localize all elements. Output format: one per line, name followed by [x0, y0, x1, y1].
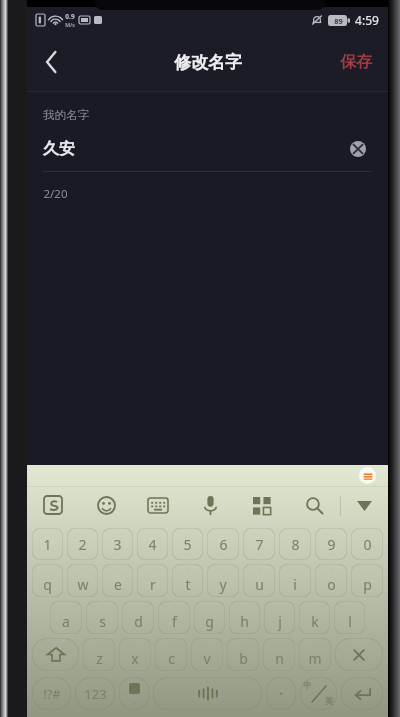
button[interactable]: Symbols: [32, 677, 71, 710]
staticText: r: [150, 575, 156, 594]
staticText: 中: [303, 680, 312, 691]
staticText: n: [275, 649, 284, 668]
button[interactable]: ': [172, 564, 203, 597]
button[interactable]: ': [351, 564, 383, 597]
button[interactable]: 2: [67, 528, 98, 560]
staticText: 0.9: [65, 12, 75, 21]
button[interactable]: Assistant: [359, 467, 376, 484]
staticText: 3: [113, 535, 122, 554]
button[interactable]: Period: [266, 677, 296, 710]
staticText: h: [240, 612, 249, 631]
button[interactable]: Text style: [119, 677, 149, 710]
staticText: 9: [327, 535, 336, 554]
button[interactable]: Enter: [341, 677, 383, 710]
button[interactable]: 9: [315, 528, 347, 560]
staticText: z: [96, 649, 103, 668]
button[interactable]: ': [227, 638, 259, 671]
button[interactable]: ': [264, 601, 295, 634]
staticText: b: [239, 649, 248, 668]
button[interactable]: ': [191, 638, 223, 671]
button[interactable]: 3: [102, 528, 133, 560]
staticText: ,: [133, 694, 136, 705]
button[interactable]: ': [299, 601, 330, 634]
staticText: 4:59: [355, 12, 379, 28]
button[interactable]: ': [50, 601, 82, 634]
button[interactable]: ': [122, 601, 154, 634]
button[interactable]: 4: [137, 528, 168, 560]
button[interactable]: Clear text: [344, 136, 372, 162]
staticText: v: [203, 649, 211, 668]
button[interactable]: ': [119, 638, 151, 671]
button[interactable]: ': [194, 601, 225, 634]
button[interactable]: ': [32, 564, 63, 597]
button[interactable]: Shift: [32, 638, 79, 671]
staticText: u: [255, 575, 264, 594]
button[interactable]: Chinese English toggle: [300, 677, 337, 710]
button[interactable]: 7: [243, 528, 275, 560]
button[interactable]: ': [207, 564, 239, 597]
button[interactable]: ': [155, 638, 187, 671]
button[interactable]: ': [229, 601, 260, 634]
button[interactable]: 保存: [324, 38, 388, 86]
button[interactable]: ': [67, 564, 98, 597]
staticText: j: [278, 612, 282, 631]
staticText: e: [114, 575, 122, 594]
staticText: 修改名字: [174, 52, 242, 73]
staticText: d: [134, 612, 143, 631]
staticText: 6: [219, 535, 228, 554]
staticText: m: [308, 649, 322, 668]
button[interactable]: 5: [172, 528, 203, 560]
staticText: 0: [363, 535, 372, 554]
staticText: 2/20: [43, 186, 68, 202]
staticText: s: [99, 612, 106, 631]
button[interactable]: 0: [351, 528, 383, 560]
button[interactable]: Keyboard layout: [132, 487, 184, 524]
button[interactable]: ': [86, 601, 118, 634]
button[interactable]: ': [315, 564, 347, 597]
staticText: 4: [148, 535, 157, 554]
button[interactable]: ': [102, 564, 133, 597]
button[interactable]: 1: [32, 528, 63, 560]
button[interactable]: 6: [207, 528, 239, 560]
button[interactable]: Backspace: [335, 638, 383, 671]
staticText: 89: [334, 16, 343, 26]
button[interactable]: ': [279, 564, 311, 597]
staticText: !?#: [43, 685, 61, 703]
button[interactable]: ': [299, 638, 331, 671]
button[interactable]: Input method: [27, 487, 80, 524]
button[interactable]: Space: [153, 677, 262, 710]
staticText: 保存: [340, 52, 372, 72]
button[interactable]: ': [334, 601, 365, 634]
button[interactable]: Emoji: [80, 487, 132, 524]
button[interactable]: ': [158, 601, 190, 634]
staticText: M/s: [65, 21, 75, 28]
button[interactable]: ': [243, 564, 275, 597]
staticText: ·: [279, 684, 283, 703]
button[interactable]: 8: [279, 528, 311, 560]
button[interactable]: Voice input: [184, 487, 236, 524]
staticText: w: [77, 575, 89, 594]
staticText: 2: [78, 535, 87, 554]
staticText: g: [205, 612, 214, 631]
button[interactable]: Hide keyboard: [341, 487, 388, 524]
button[interactable]: Numbers: [75, 677, 115, 710]
button[interactable]: ': [83, 638, 115, 671]
button[interactable]: ': [263, 638, 295, 671]
button[interactable]: ': [137, 564, 168, 597]
button[interactable]: Back: [27, 38, 75, 86]
button[interactable]: More tools: [236, 487, 288, 524]
button[interactable]: Search: [288, 487, 340, 524]
